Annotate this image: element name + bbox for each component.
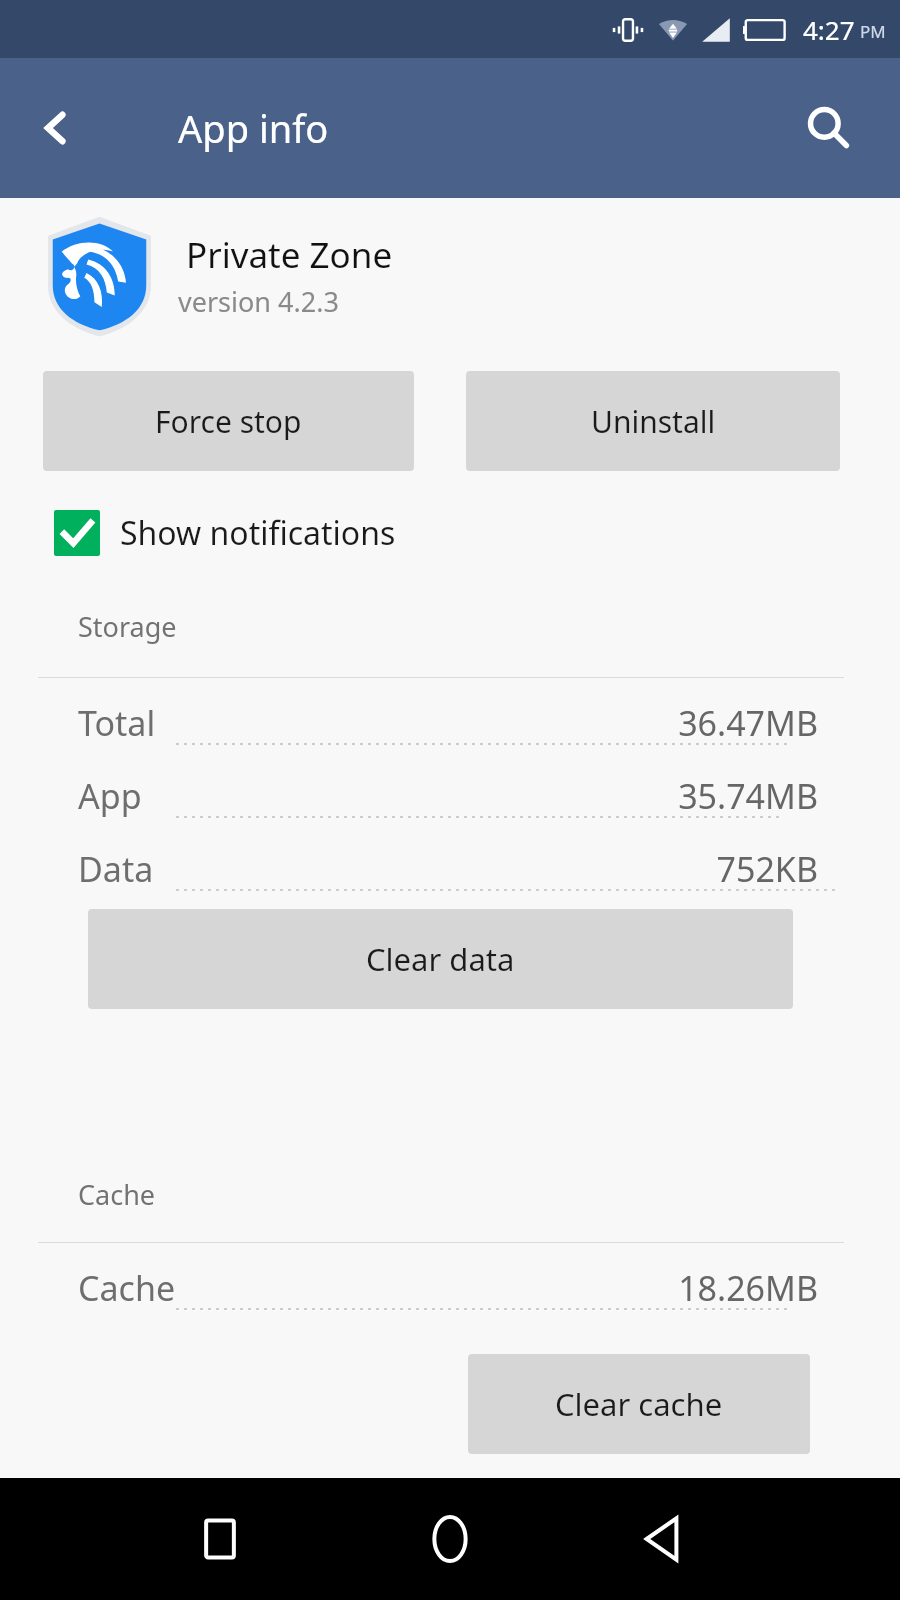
- staticText: Uninstall: [591, 401, 716, 442]
- button[interactable]: Data: [0, 841, 900, 914]
- button[interactable]: App: [0, 768, 900, 841]
- button[interactable]: Back: [620, 1497, 704, 1581]
- staticText: Private Zone: [186, 231, 393, 279]
- staticText: Clear cache: [555, 1383, 723, 1425]
- button[interactable]: Clear cache: [468, 1354, 810, 1454]
- button[interactable]: Recent apps: [178, 1497, 262, 1581]
- button[interactable]: Home: [408, 1497, 492, 1581]
- button[interactable]: Search: [792, 92, 864, 164]
- staticText: Storage: [78, 608, 177, 645]
- staticText: version 4.2.3: [178, 283, 339, 320]
- staticText: Cache: [78, 1176, 156, 1213]
- staticText: Clear data: [366, 938, 515, 980]
- staticText: PM: [860, 20, 886, 43]
- staticText: Total: [78, 700, 156, 746]
- button[interactable]: Force stop: [43, 371, 414, 471]
- staticText: Force stop: [155, 401, 302, 442]
- staticText: 35.74MB: [418, 773, 818, 819]
- button[interactable]: Back: [22, 94, 90, 162]
- staticText: 18.26MB: [418, 1265, 818, 1311]
- staticText: 752KB: [418, 846, 818, 892]
- button[interactable]: Uninstall: [466, 371, 840, 471]
- staticText: App info: [178, 102, 329, 154]
- staticText: 36.47MB: [418, 700, 818, 746]
- staticText: Cache: [78, 1265, 176, 1311]
- staticText: App: [78, 773, 142, 819]
- button[interactable]: Clear data: [88, 909, 793, 1009]
- button[interactable]: Total: [0, 695, 900, 768]
- staticText: Data: [78, 846, 154, 892]
- button[interactable]: Show notifications: [43, 498, 463, 568]
- staticText: 4:27: [803, 12, 855, 47]
- staticText: Show notifications: [120, 511, 396, 555]
- button[interactable]: Cache: [0, 1260, 900, 1333]
